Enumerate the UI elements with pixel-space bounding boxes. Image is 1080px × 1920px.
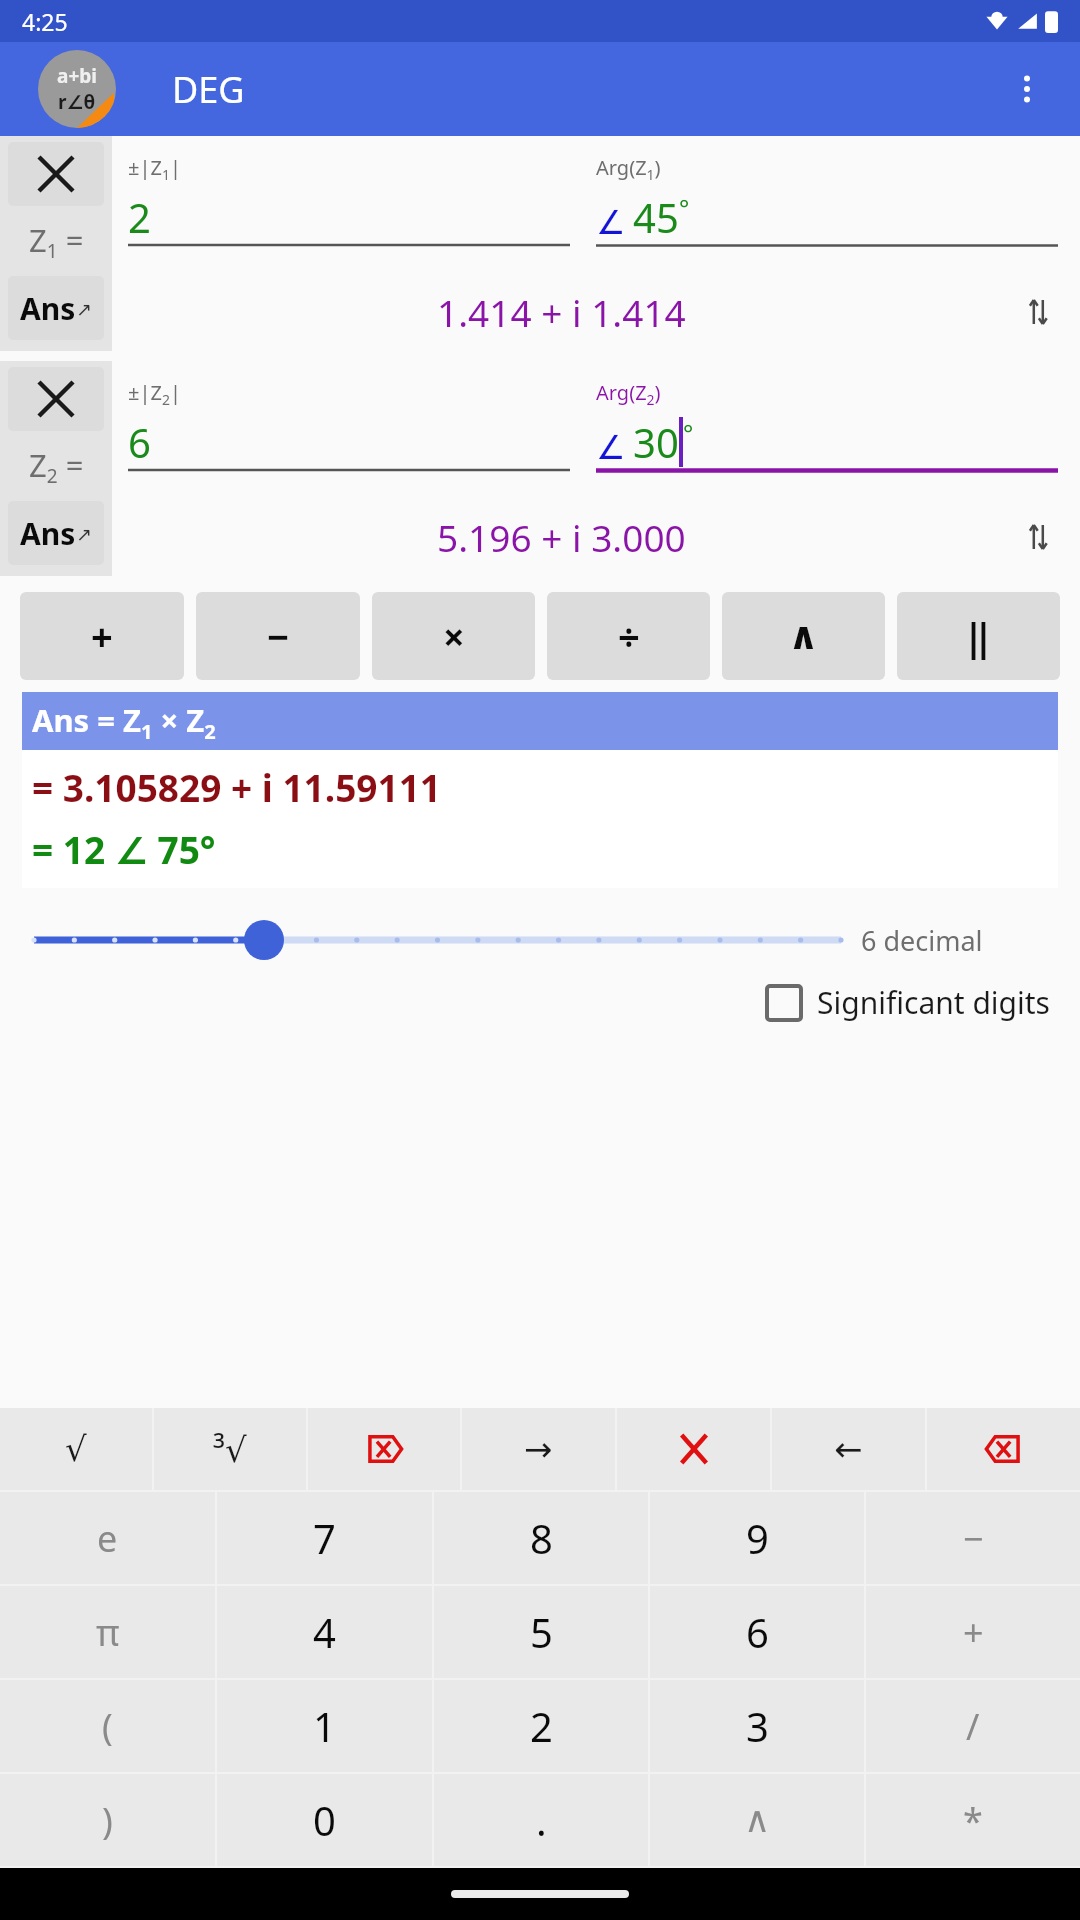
button[interactable]: / <box>866 1680 1080 1772</box>
staticText: ← <box>834 1429 863 1469</box>
button[interactable]: 6 <box>650 1586 864 1678</box>
button[interactable]: Clear <box>8 142 104 206</box>
button[interactable]: Significant digits <box>761 976 1056 1029</box>
button[interactable]: 9 <box>650 1492 864 1584</box>
staticText: . <box>536 1793 547 1847</box>
staticText: Arg(Z1) <box>596 154 661 184</box>
staticText: ÷ <box>618 610 640 662</box>
button[interactable]: Clear entry <box>308 1408 460 1490</box>
staticText: ) <box>102 1796 113 1845</box>
staticText: + <box>963 1608 984 1657</box>
staticText: → <box>524 1429 553 1469</box>
staticText: − <box>963 1514 984 1563</box>
staticText: 1.414 + i 1.414 <box>437 287 686 337</box>
staticText: Z2 = <box>29 444 84 489</box>
button[interactable]: √ <box>0 1408 152 1490</box>
staticText: ° <box>683 416 694 449</box>
button[interactable]: 1 <box>217 1680 432 1772</box>
button[interactable]: Swap form <box>1014 288 1062 336</box>
button[interactable]: → <box>462 1408 615 1490</box>
staticText: Z1 = <box>29 219 84 264</box>
button[interactable]: . <box>434 1774 648 1866</box>
staticText: 30 <box>633 415 679 469</box>
staticText: ³√ <box>213 1426 247 1472</box>
button[interactable]: ÷ <box>547 592 710 680</box>
staticText: 45 <box>633 190 679 244</box>
staticText: ° <box>679 191 690 224</box>
button[interactable]: App icon <box>38 50 116 128</box>
button[interactable]: Ans <box>8 501 104 565</box>
button[interactable]: 4 <box>217 1586 432 1678</box>
staticText: π <box>96 1608 120 1657</box>
button[interactable]: 3 <box>650 1680 864 1772</box>
staticText: 7 <box>313 1511 336 1565</box>
button[interactable]: + <box>20 592 184 680</box>
staticText: 1 <box>313 1699 336 1753</box>
button[interactable]: Swap form <box>1014 513 1062 561</box>
button[interactable]: 8 <box>434 1492 648 1584</box>
button[interactable]: × <box>372 592 535 680</box>
staticText: 6 <box>746 1605 769 1659</box>
staticText: ±|Z2| <box>128 379 181 409</box>
button[interactable]: ∧ <box>722 592 885 680</box>
button[interactable]: 5 <box>434 1586 648 1678</box>
staticText: Ans <box>20 288 76 329</box>
button[interactable]: 6 <box>128 409 570 469</box>
button[interactable]: 7 <box>217 1492 432 1584</box>
staticText: 8 <box>530 1511 553 1565</box>
staticText: 2 <box>128 190 151 244</box>
button[interactable]: 2 <box>128 184 570 244</box>
staticText: r∠θ <box>58 89 96 115</box>
button[interactable]: ∠ <box>596 409 1058 469</box>
staticText: a+bi <box>57 63 97 89</box>
staticText: = 3.105829 + i 11.59111 <box>32 762 441 812</box>
staticText: 5.196 + i 3.000 <box>437 512 686 562</box>
button[interactable]: ) <box>0 1774 215 1866</box>
button[interactable]: − <box>196 592 360 680</box>
button[interactable]: Ans = Z1 × Z2 <box>22 692 1058 750</box>
button[interactable]: π <box>0 1586 215 1678</box>
button[interactable]: Clear <box>8 367 104 431</box>
button[interactable]: ³√ <box>154 1408 306 1490</box>
button[interactable]: 0 <box>217 1774 432 1866</box>
staticText: × <box>443 610 465 662</box>
staticText: √ <box>65 1429 87 1469</box>
staticText: 6 decimal <box>861 922 1056 959</box>
staticText: 4:25 <box>22 6 68 37</box>
staticText: Significant digits <box>817 982 1050 1023</box>
staticText: 6 <box>128 415 151 469</box>
staticText: ∧ <box>788 614 819 658</box>
staticText: e <box>97 1514 118 1563</box>
button[interactable]: ← <box>772 1408 925 1490</box>
staticText: ∧ <box>744 1799 771 1841</box>
staticText: − <box>267 610 290 662</box>
button[interactable]: 2 <box>434 1680 648 1772</box>
staticText: 9 <box>746 1511 769 1565</box>
button[interactable]: Clear all <box>617 1408 770 1490</box>
button[interactable]: More options <box>1000 62 1054 116</box>
button[interactable]: e <box>0 1492 215 1584</box>
button[interactable]: Backspace <box>927 1408 1080 1490</box>
staticText: 5 <box>530 1605 553 1659</box>
button[interactable]: ‖ <box>897 592 1060 680</box>
staticText: DEG <box>172 65 245 114</box>
button[interactable]: ( <box>0 1680 215 1772</box>
staticText: ∠ <box>596 203 626 241</box>
staticText: 3 <box>746 1699 769 1753</box>
staticText: ( <box>102 1702 113 1751</box>
staticText: Ans = Z1 × Z2 <box>32 699 216 744</box>
staticText: 2 <box>530 1699 553 1753</box>
staticText: 4 <box>313 1605 336 1659</box>
button[interactable]: Ans <box>8 276 104 340</box>
staticText: ↗ <box>76 298 92 320</box>
staticText: ↗ <box>76 523 92 545</box>
button[interactable]: + <box>866 1586 1080 1678</box>
button[interactable]: − <box>866 1492 1080 1584</box>
button[interactable]: ∠ <box>596 184 1058 244</box>
button[interactable]: ∧ <box>650 1774 864 1866</box>
staticText: = 12 ∠ 75° <box>32 824 216 874</box>
button[interactable]: Decimal places slider <box>34 914 841 966</box>
staticText: Ans <box>20 513 76 554</box>
button[interactable]: * <box>866 1774 1080 1866</box>
staticText: * <box>963 1796 983 1845</box>
